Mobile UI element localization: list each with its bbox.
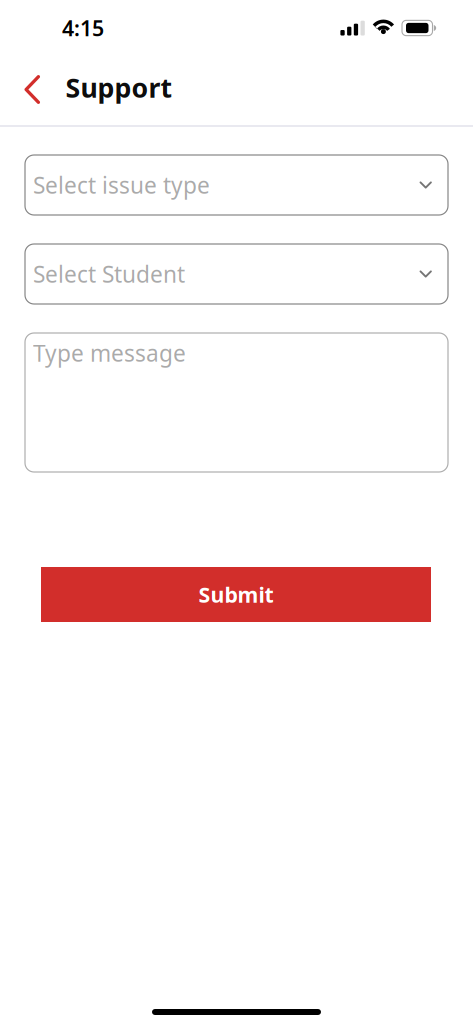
staticText: Select issue type	[33, 170, 210, 200]
button[interactable]: Submit	[41, 567, 431, 622]
staticText: Type message	[33, 338, 186, 368]
button[interactable]: Select Student	[25, 244, 448, 304]
staticText: Submit	[198, 580, 273, 609]
button[interactable]: Type message	[25, 333, 448, 472]
button[interactable]: Back	[0, 56, 65, 125]
staticText: Support	[65, 70, 172, 105]
staticText: Select Student	[33, 259, 185, 289]
staticText: 4:15	[62, 14, 104, 42]
button[interactable]: Select issue type	[25, 155, 448, 215]
